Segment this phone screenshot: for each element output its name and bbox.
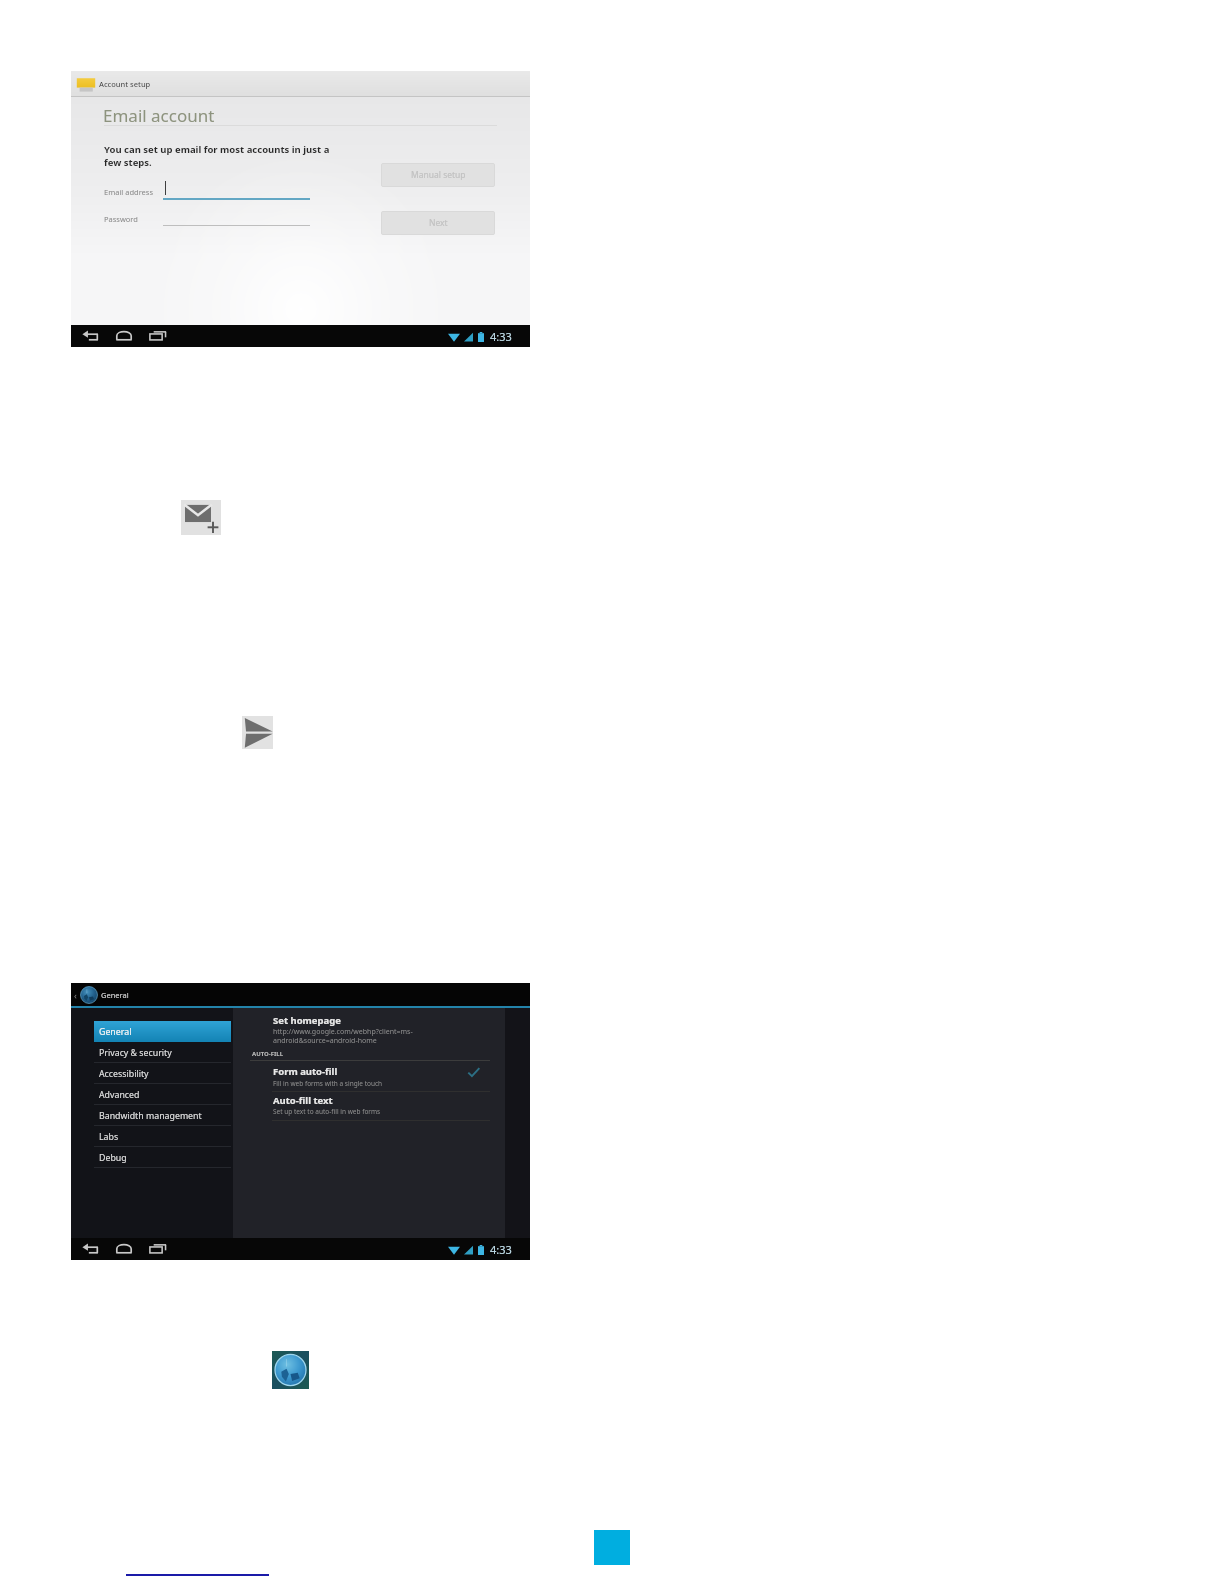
button[interactable]: Manual setup [381, 163, 495, 187]
staticText: http://www.google.com/webhp?client=ms- a… [273, 1027, 413, 1045]
button[interactable]: Recent apps [141, 325, 175, 347]
staticText: Fill in web forms with a single touch [273, 1079, 383, 1088]
staticText: Form auto-fill [273, 1065, 338, 1078]
staticText: Accessibility [99, 1068, 149, 1080]
staticText: General [99, 1026, 132, 1038]
button[interactable]: Home [107, 1238, 141, 1260]
staticText: You can set up email for most accounts i… [104, 143, 330, 169]
button[interactable]: Back [74, 325, 108, 347]
button[interactable]: Accessibility [94, 1063, 231, 1084]
button[interactable]: General [94, 1021, 231, 1042]
staticText: Email address [104, 187, 154, 197]
button[interactable]: Send [242, 716, 273, 749]
staticText: Set up text to auto-fill in web forms [273, 1107, 381, 1116]
staticText: Auto-fill text [273, 1094, 333, 1107]
staticText: Password [104, 214, 138, 224]
button[interactable]: Add email account [181, 500, 221, 535]
button[interactable]: Privacy & security [94, 1042, 231, 1063]
staticText: 4:33 [490, 329, 512, 344]
staticText: Set homepage [273, 1014, 341, 1027]
button[interactable]: Labs [94, 1126, 231, 1147]
button[interactable]: Browser [272, 1351, 309, 1389]
button[interactable]: Bandwidth management [94, 1105, 231, 1126]
button[interactable]: Next [381, 211, 495, 235]
staticText: Privacy & security [99, 1047, 172, 1059]
staticText: Bandwidth management [99, 1110, 202, 1122]
staticText: Manual setup [411, 169, 466, 181]
staticText: Advanced [99, 1089, 140, 1101]
button[interactable]: Advanced [94, 1084, 231, 1105]
button[interactable]: Home [107, 325, 141, 347]
button[interactable]: Back [74, 1238, 108, 1260]
button[interactable]: Debug [94, 1147, 231, 1168]
button[interactable]: Recent apps [141, 1238, 175, 1260]
staticText: AUTO-FILL [252, 1050, 284, 1058]
staticText: ‹ [74, 989, 77, 1001]
staticText: 4:33 [490, 1242, 512, 1257]
staticText: General [101, 990, 129, 1000]
staticText: Next [429, 217, 448, 229]
staticText: Email account [103, 104, 215, 127]
staticText: Labs [99, 1131, 119, 1143]
staticText: Debug [99, 1152, 127, 1164]
staticText: Account setup [99, 79, 151, 89]
